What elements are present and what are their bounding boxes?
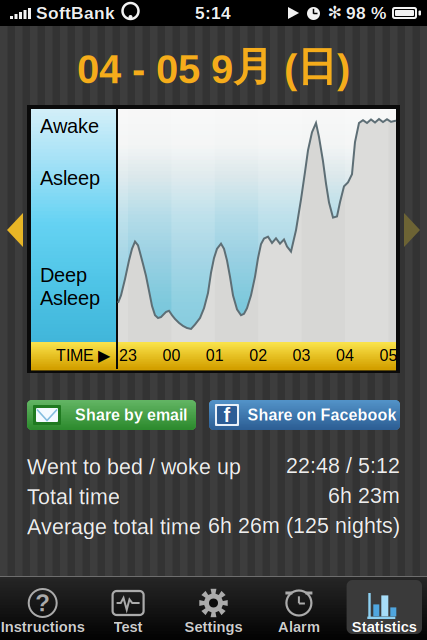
button[interactable]: Next night: [397, 206, 427, 254]
staticText: 6h 23m: [328, 484, 400, 507]
button[interactable]: Test: [85, 577, 171, 640]
staticText: 22:48 / 5:12: [286, 454, 400, 477]
staticText: TIME ▶: [56, 346, 110, 365]
staticText: Awake: [40, 115, 99, 137]
staticText: 05: [379, 347, 397, 364]
button[interactable]: Share by email: [27, 400, 196, 430]
staticText: 01: [206, 347, 224, 364]
button[interactable]: ?: [0, 577, 85, 640]
staticText: Alarm: [278, 619, 320, 635]
button[interactable]: Settings: [171, 577, 256, 640]
staticText: Test: [114, 619, 143, 635]
staticText: 04: [336, 347, 354, 364]
staticText: Statistics: [352, 619, 417, 635]
staticText: 03: [293, 347, 311, 364]
staticText: 02: [249, 347, 267, 364]
button[interactable]: Alarm: [256, 577, 342, 640]
staticText: SoftBank: [36, 3, 115, 23]
staticText: Total time: [27, 485, 120, 509]
staticText: Share on Facebook: [247, 406, 396, 424]
staticText: Asleep: [40, 287, 100, 309]
staticText: 98 %: [346, 3, 386, 23]
button[interactable]: f: [209, 400, 400, 430]
staticText: Share by email: [75, 406, 187, 424]
button[interactable]: Statistics: [342, 577, 427, 640]
staticText: 00: [162, 347, 180, 364]
staticText: 23: [119, 347, 137, 364]
staticText: Went to bed / woke up: [27, 455, 241, 479]
staticText: f: [223, 404, 230, 426]
staticText: Instructions: [1, 619, 85, 635]
staticText: Asleep: [40, 167, 100, 189]
staticText: 5:14: [195, 3, 231, 23]
staticText: 04 - 05 9月 (日): [77, 42, 350, 92]
staticText: ✻: [327, 2, 342, 23]
staticText: Settings: [184, 619, 242, 635]
staticText: Deep: [40, 264, 87, 286]
staticText: Average total time: [27, 515, 201, 539]
staticText: 6h 26m (125 nights): [208, 514, 400, 537]
button[interactable]: Previous night: [0, 206, 30, 254]
staticText: ?: [35, 590, 50, 616]
